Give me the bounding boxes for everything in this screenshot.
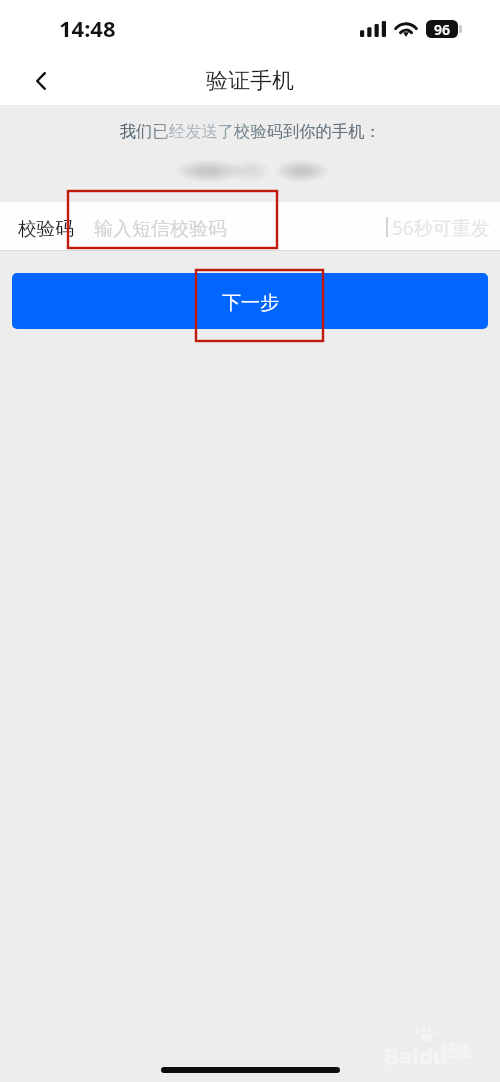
button[interactable]: Back: [18, 56, 64, 105]
staticText: 我们已经发送了校验码到你的手机：: [120, 121, 381, 142]
staticText: 56秒可重发: [392, 215, 490, 241]
button[interactable]: 下一步: [12, 273, 488, 329]
staticText: 经验: [440, 1042, 472, 1062]
staticText: 验证手机: [206, 67, 294, 95]
button[interactable]: 校验码: [0, 202, 500, 251]
staticText: 96: [434, 20, 451, 38]
staticText: 校验码: [18, 217, 74, 240]
staticText: 14:48: [59, 13, 116, 43]
staticText: 输入短信校验码: [94, 217, 227, 241]
staticText: 下一步: [222, 291, 279, 315]
